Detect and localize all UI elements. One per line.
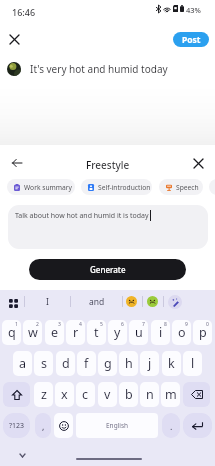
button[interactable]: u xyxy=(129,320,148,345)
staticText: Generate xyxy=(90,264,126,275)
staticText: 5 xyxy=(100,321,103,328)
staticText: I xyxy=(46,296,49,308)
staticText: b xyxy=(125,386,133,403)
button[interactable]: c xyxy=(76,382,95,407)
staticText: 0 xyxy=(206,321,209,328)
staticText: 3 xyxy=(58,321,61,328)
button[interactable]: i xyxy=(151,320,170,345)
button[interactable]: l xyxy=(183,351,202,376)
staticText: j xyxy=(148,355,152,372)
staticText: Work summary xyxy=(24,183,72,192)
button[interactable]: Generate xyxy=(29,259,186,280)
staticText: a xyxy=(19,355,27,372)
staticText: m xyxy=(165,386,177,403)
button[interactable]: a xyxy=(13,351,32,376)
button[interactable]: w xyxy=(23,320,42,345)
button[interactable]: Dismiss xyxy=(188,153,208,173)
button[interactable]: m xyxy=(161,382,180,407)
button[interactable]: Self-introduction xyxy=(81,179,152,195)
staticText: ?123 xyxy=(9,421,25,431)
button[interactable]: Work summary xyxy=(7,179,75,195)
button[interactable]: p xyxy=(193,320,212,345)
button[interactable]: Talk about how hot and humid it is today xyxy=(8,205,208,249)
staticText: 4 xyxy=(79,321,82,328)
button[interactable]: Close xyxy=(4,29,24,49)
button[interactable]: j xyxy=(140,351,159,376)
button[interactable]: Post xyxy=(173,32,209,47)
staticText: 6 xyxy=(121,321,124,328)
button[interactable]: o xyxy=(172,320,191,345)
staticText: l xyxy=(191,355,195,372)
staticText: Talk about how hot and humid it is today xyxy=(15,211,149,221)
button[interactable]: e xyxy=(45,320,64,345)
staticText: p xyxy=(199,324,207,341)
staticText: c xyxy=(82,386,89,403)
staticText: v xyxy=(104,386,111,403)
button[interactable]: q xyxy=(2,320,21,345)
staticText: d xyxy=(62,355,70,372)
button[interactable]: ?123 xyxy=(3,413,30,438)
staticText: It's very hot and humid today xyxy=(30,62,168,76)
staticText: y xyxy=(114,324,121,341)
button[interactable]: , xyxy=(35,413,51,438)
staticText: 16:46 xyxy=(12,6,36,18)
button[interactable]: English xyxy=(76,413,158,438)
button[interactable]: I xyxy=(25,291,70,313)
staticText: h xyxy=(125,355,133,372)
button[interactable]: Backspace xyxy=(183,382,210,407)
staticText: , xyxy=(42,420,45,432)
staticText: Freestyle xyxy=(86,158,130,172)
button[interactable]: v xyxy=(98,382,117,407)
button[interactable]: Emoji xyxy=(54,413,73,438)
button[interactable]: t xyxy=(87,320,106,345)
button[interactable]: z xyxy=(34,382,53,407)
staticText: . xyxy=(170,420,173,432)
staticText: n xyxy=(146,386,154,403)
staticText: i xyxy=(159,324,163,341)
staticText: z xyxy=(41,386,47,403)
button[interactable]: x xyxy=(55,382,74,407)
button[interactable]: Emoji xyxy=(147,296,158,307)
staticText: Speech xyxy=(176,183,199,192)
button[interactable]: Emoji xyxy=(126,296,137,307)
button[interactable]: s xyxy=(34,351,53,376)
staticText: f xyxy=(84,355,89,372)
staticText: 8 xyxy=(164,321,167,328)
button[interactable]: Clipboard xyxy=(4,294,22,312)
staticText: Self-introduction xyxy=(98,183,151,192)
staticText: q xyxy=(8,324,16,341)
staticText: 2 xyxy=(36,321,39,328)
button[interactable]: h xyxy=(119,351,138,376)
button[interactable]: Shift xyxy=(3,382,30,407)
button[interactable]: More prompts xyxy=(209,179,215,195)
staticText: 43% xyxy=(186,5,201,15)
staticText: u xyxy=(135,324,143,341)
staticText: 9 xyxy=(185,321,188,328)
button[interactable]: Speech xyxy=(159,179,203,195)
button[interactable]: n xyxy=(140,382,159,407)
button[interactable]: Smart compose xyxy=(168,295,182,309)
staticText: k xyxy=(168,355,175,372)
staticText: 7 xyxy=(142,321,145,328)
button[interactable]: d xyxy=(56,351,75,376)
staticText: g xyxy=(104,355,112,372)
button[interactable]: . xyxy=(162,413,180,438)
staticText: e xyxy=(51,324,59,341)
button[interactable]: k xyxy=(162,351,181,376)
staticText: t xyxy=(94,324,99,341)
button[interactable]: y xyxy=(108,320,127,345)
staticText: o xyxy=(178,324,186,341)
staticText: r xyxy=(73,324,79,341)
staticText: s xyxy=(41,355,47,372)
staticText: x xyxy=(61,386,68,403)
staticText: Post xyxy=(182,34,201,46)
button[interactable]: Back xyxy=(7,153,27,173)
button[interactable]: g xyxy=(98,351,117,376)
button[interactable]: r xyxy=(66,320,85,345)
button[interactable]: f xyxy=(77,351,96,376)
button[interactable]: and xyxy=(71,291,122,313)
button[interactable]: b xyxy=(119,382,138,407)
staticText: English xyxy=(106,421,129,430)
button[interactable]: Enter xyxy=(183,413,212,438)
button[interactable]: Hide keyboard xyxy=(14,447,31,464)
